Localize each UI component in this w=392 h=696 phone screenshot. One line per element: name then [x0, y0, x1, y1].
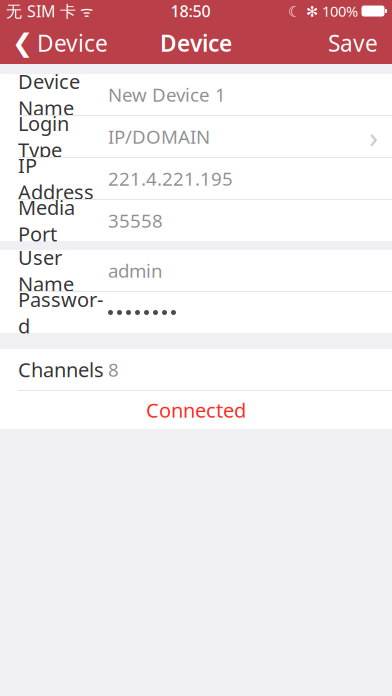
staticText: User Name	[18, 244, 74, 297]
staticText: IP Address	[18, 152, 94, 205]
staticText: 35558	[108, 208, 163, 233]
staticText: Device Name	[18, 68, 80, 121]
staticText: IP/DOMAIN	[108, 124, 210, 149]
button[interactable]: Connected	[0, 391, 392, 429]
staticText: Password	[18, 286, 103, 339]
staticText: ᯤ	[76, 1, 93, 21]
button[interactable]: Save	[328, 20, 392, 66]
staticText: Save	[328, 28, 378, 58]
staticText: 无 SIM 卡	[6, 0, 76, 22]
staticText: New Device 1	[108, 82, 226, 107]
button[interactable]: Password	[0, 292, 392, 333]
staticText: Media Port	[18, 194, 75, 247]
staticText: ❮	[12, 29, 33, 57]
staticText: 8	[108, 357, 119, 382]
staticText: Connected	[146, 397, 246, 423]
staticText: admin	[108, 258, 163, 283]
staticText: ☾ ✻ 100%	[288, 1, 358, 21]
staticText: Channels	[18, 356, 104, 383]
staticText: 221.4.221.195	[108, 166, 233, 191]
staticText: ›	[369, 117, 378, 156]
button[interactable]: Login Type	[0, 116, 392, 157]
button[interactable]: Media Port	[0, 200, 392, 241]
button[interactable]: User Name	[0, 250, 392, 291]
button[interactable]: Device Name	[0, 74, 392, 115]
staticText: Device	[37, 28, 108, 58]
staticText: Device	[160, 28, 232, 58]
staticText: Login Type	[18, 110, 69, 163]
button[interactable]: ❮	[0, 20, 108, 66]
button[interactable]: Channels	[0, 349, 392, 390]
staticText: 18:50	[170, 0, 210, 22]
button[interactable]: IP Address	[0, 158, 392, 199]
